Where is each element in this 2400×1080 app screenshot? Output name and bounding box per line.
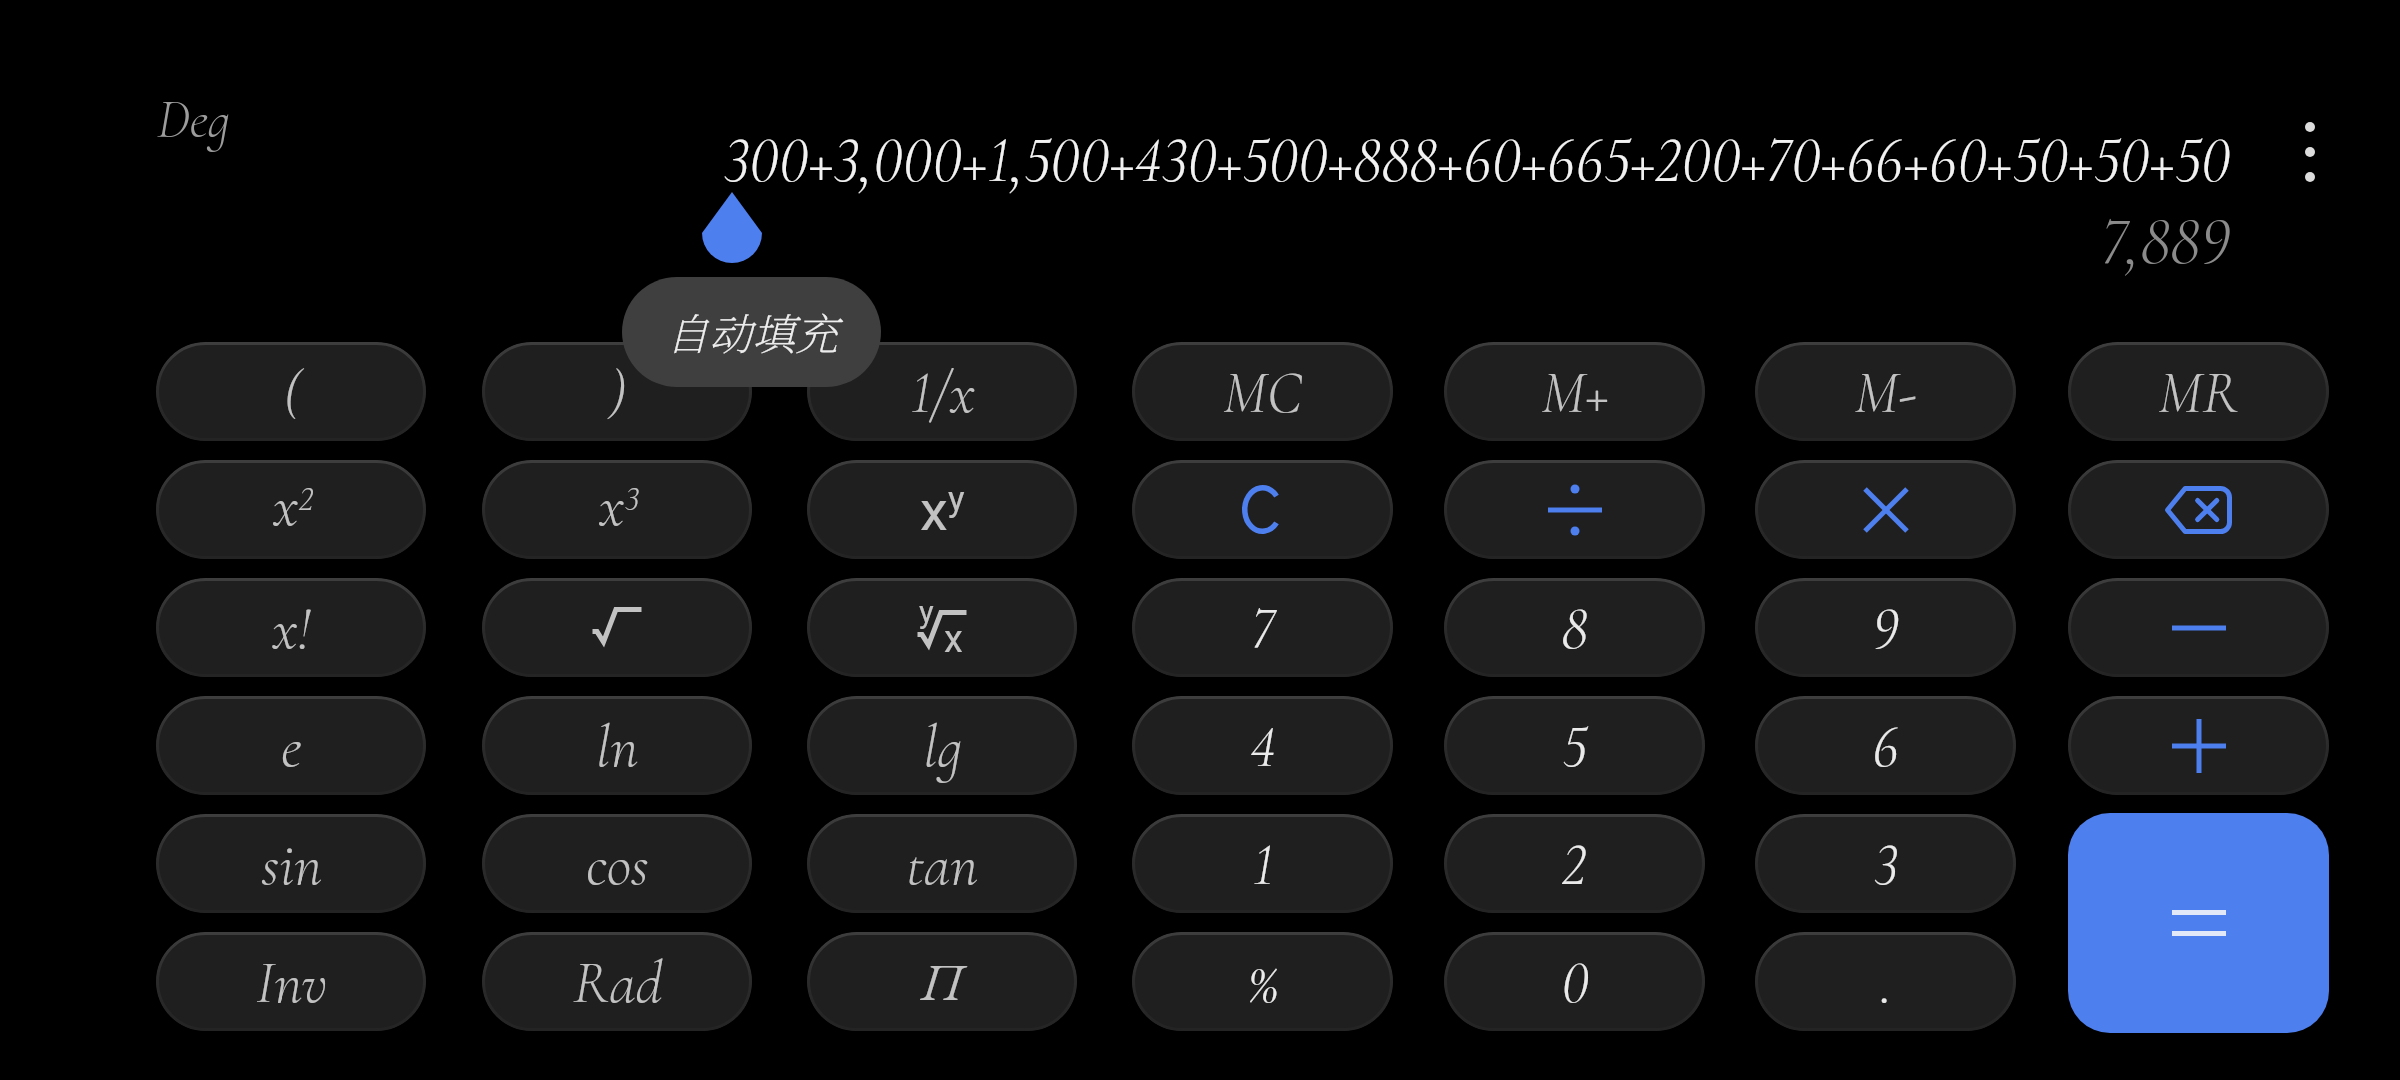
staticText: Deg — [157, 87, 230, 152]
button[interactable]: Inv — [156, 932, 426, 1031]
staticText: cos — [586, 829, 649, 902]
button[interactable]: ) — [482, 342, 752, 441]
button[interactable]: Minus — [2068, 578, 2329, 677]
button[interactable]: 2 — [1444, 814, 1705, 913]
staticText: x — [920, 478, 948, 544]
button[interactable]: x — [482, 460, 752, 559]
button[interactable]: 自动填充 — [622, 277, 881, 387]
staticText: 300+3,000+1,500+430+500+888+60+665+200+7… — [724, 122, 2231, 200]
staticText: 7 — [1251, 593, 1275, 666]
button[interactable]: M- — [1755, 342, 2016, 441]
button[interactable]: e — [156, 696, 426, 795]
button[interactable]: 3 — [1755, 814, 2016, 913]
button[interactable]: cos — [482, 814, 752, 913]
staticText: 1/x — [910, 357, 975, 430]
button[interactable]: 1 — [1132, 814, 1393, 913]
button[interactable]: Square root — [482, 578, 752, 677]
staticText: ) — [609, 357, 626, 430]
staticText: 7,889 — [2101, 200, 2231, 282]
button[interactable]: 8 — [1444, 578, 1705, 677]
staticText: 自动填充 — [666, 301, 838, 363]
staticText: y — [919, 594, 934, 630]
staticText: x — [273, 470, 299, 543]
staticText: 3 — [625, 477, 640, 521]
button[interactable]: Multiply — [1755, 460, 2016, 559]
staticText: ( — [283, 357, 300, 430]
staticText: lg — [923, 711, 962, 784]
staticText: 2 — [299, 477, 314, 521]
button[interactable]: % — [1132, 932, 1393, 1031]
button[interactable]: Equals — [2068, 813, 2329, 1033]
button[interactable]: MC — [1132, 342, 1393, 441]
button[interactable]: tan — [807, 814, 1077, 913]
staticText: M+ — [1541, 357, 1609, 430]
button[interactable]: ln — [482, 696, 752, 795]
button[interactable]: Deg — [128, 76, 258, 162]
button[interactable]: More options — [2255, 77, 2365, 227]
button[interactable]: 1/x — [807, 342, 1077, 441]
button[interactable]: Rad — [482, 932, 752, 1031]
staticText: M- — [1854, 357, 1917, 430]
button[interactable]: 6 — [1755, 696, 2016, 795]
staticText: 4 — [1250, 711, 1276, 784]
staticText: 3 — [1874, 829, 1898, 902]
staticText: 8 — [1561, 593, 1588, 666]
staticText: MC — [1223, 357, 1302, 430]
button[interactable]: sin — [156, 814, 426, 913]
staticText: y — [948, 479, 965, 520]
button[interactable]: x! — [156, 578, 426, 677]
button[interactable]: 0 — [1444, 932, 1705, 1031]
staticText: Π — [921, 948, 963, 1016]
button[interactable]: Nth root — [807, 578, 1077, 677]
staticText: 9 — [1872, 593, 1899, 666]
staticText: x — [599, 470, 625, 543]
button[interactable]: x — [156, 460, 426, 559]
button[interactable]: Π — [807, 932, 1077, 1031]
button[interactable]: M+ — [1444, 342, 1705, 441]
staticText: x! — [272, 593, 311, 666]
staticText: 5 — [1562, 711, 1587, 784]
staticText: x — [944, 617, 963, 662]
button[interactable]: Divide — [1444, 460, 1705, 559]
staticText: tan — [906, 829, 978, 902]
button[interactable]: MR — [2068, 342, 2329, 441]
staticText: ln — [596, 711, 638, 784]
staticText: Rad — [573, 947, 662, 1020]
staticText: Inv — [256, 947, 327, 1020]
staticText: 1 — [1252, 829, 1274, 902]
button[interactable]: 7 — [1132, 578, 1393, 677]
staticText: MR — [2158, 357, 2239, 430]
staticText: % — [1247, 947, 1279, 1020]
staticText: e — [281, 711, 302, 784]
button[interactable]: Clear — [1132, 460, 1393, 559]
staticText: 2 — [1562, 829, 1587, 902]
button[interactable]: x to the power of y — [807, 460, 1077, 559]
staticText: sin — [261, 829, 322, 902]
button[interactable]: ( — [156, 342, 426, 441]
button[interactable]: Backspace — [2068, 460, 2329, 559]
staticText: . — [1880, 947, 1892, 1020]
staticText: 6 — [1872, 711, 1899, 784]
button[interactable]: Plus — [2068, 696, 2329, 795]
button[interactable]: 4 — [1132, 696, 1393, 795]
button[interactable]: 5 — [1444, 696, 1705, 795]
button[interactable]: 9 — [1755, 578, 2016, 677]
button[interactable]: lg — [807, 696, 1077, 795]
staticText: 0 — [1561, 947, 1589, 1020]
button[interactable]: . — [1755, 932, 2016, 1031]
